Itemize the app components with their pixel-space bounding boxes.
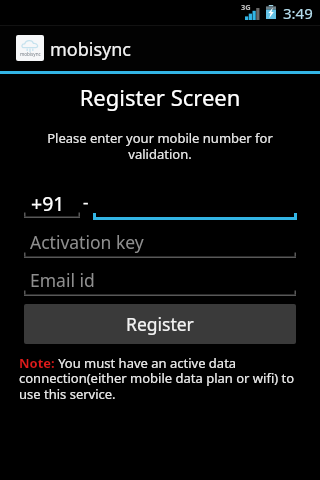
staticText: Note: You must have an active data conne…: [19, 354, 297, 403]
staticText: Please enter your mobile number for vali…: [28, 129, 292, 162]
staticText: -: [83, 190, 89, 213]
staticText: +91: [31, 190, 65, 217]
button[interactable]: [93, 188, 297, 220]
staticText: 3:49: [283, 3, 313, 23]
button[interactable]: mobisync home: [8, 25, 148, 71]
staticText: mobisync: [20, 51, 41, 57]
staticText: Register Screen: [0, 82, 320, 112]
staticText: 3G: [241, 2, 251, 12]
staticText: Register: [126, 312, 194, 336]
button[interactable]: Email id: [24, 266, 296, 295]
button[interactable]: Activation key: [24, 228, 296, 257]
staticText: Activation key: [30, 230, 144, 254]
staticText: mobisync: [50, 37, 131, 62]
button[interactable]: +91: [24, 188, 80, 217]
staticText: Email id: [30, 268, 95, 292]
button[interactable]: Register: [24, 304, 296, 344]
